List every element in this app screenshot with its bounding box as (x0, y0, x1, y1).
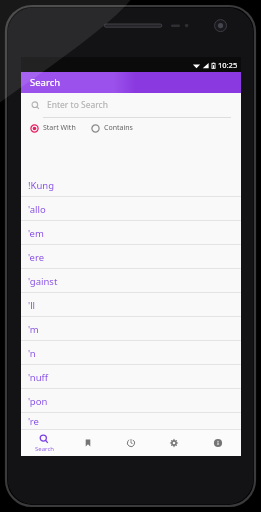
staticText: 'gainst (28, 275, 58, 288)
button[interactable]: Start With (28, 121, 78, 135)
staticText: 'em (28, 227, 44, 240)
button[interactable]: Contains (89, 121, 135, 135)
button[interactable]: 'n (21, 341, 241, 365)
button[interactable]: Bookmarks (68, 438, 108, 448)
button[interactable]: 'pon (21, 389, 241, 413)
button[interactable]: Search (24, 434, 64, 453)
button[interactable]: 'gainst (21, 269, 241, 293)
staticText: 'n (28, 347, 36, 360)
staticText: 'pon (28, 395, 48, 408)
button[interactable]: 'allo (21, 197, 241, 221)
staticText: Search (30, 76, 61, 89)
button[interactable]: Info (198, 438, 238, 448)
button[interactable]: 're (21, 413, 241, 429)
button[interactable]: 'em (21, 221, 241, 245)
button[interactable]: 'm (21, 317, 241, 341)
staticText: Start With (43, 123, 76, 133)
button[interactable]: 'ere (21, 245, 241, 269)
staticText: Contains (104, 123, 133, 133)
staticText: 're (28, 415, 39, 428)
staticText: !Kung (28, 179, 55, 192)
staticText: 'nuff (28, 371, 49, 384)
staticText: 'ere (28, 251, 45, 264)
staticText: Enter to Search (47, 99, 108, 111)
button[interactable]: !Kung (21, 173, 241, 197)
staticText: 'm (28, 323, 39, 336)
staticText: 'll (28, 299, 36, 312)
staticText: 'allo (28, 203, 46, 216)
button[interactable]: Enter to Search (21, 93, 241, 117)
button[interactable]: Settings (154, 438, 194, 448)
button[interactable]: 'nuff (21, 365, 241, 389)
button[interactable]: 'll (21, 293, 241, 317)
button[interactable]: History (111, 438, 151, 448)
staticText: 10:25 (218, 60, 238, 70)
staticText: Search (35, 445, 54, 453)
